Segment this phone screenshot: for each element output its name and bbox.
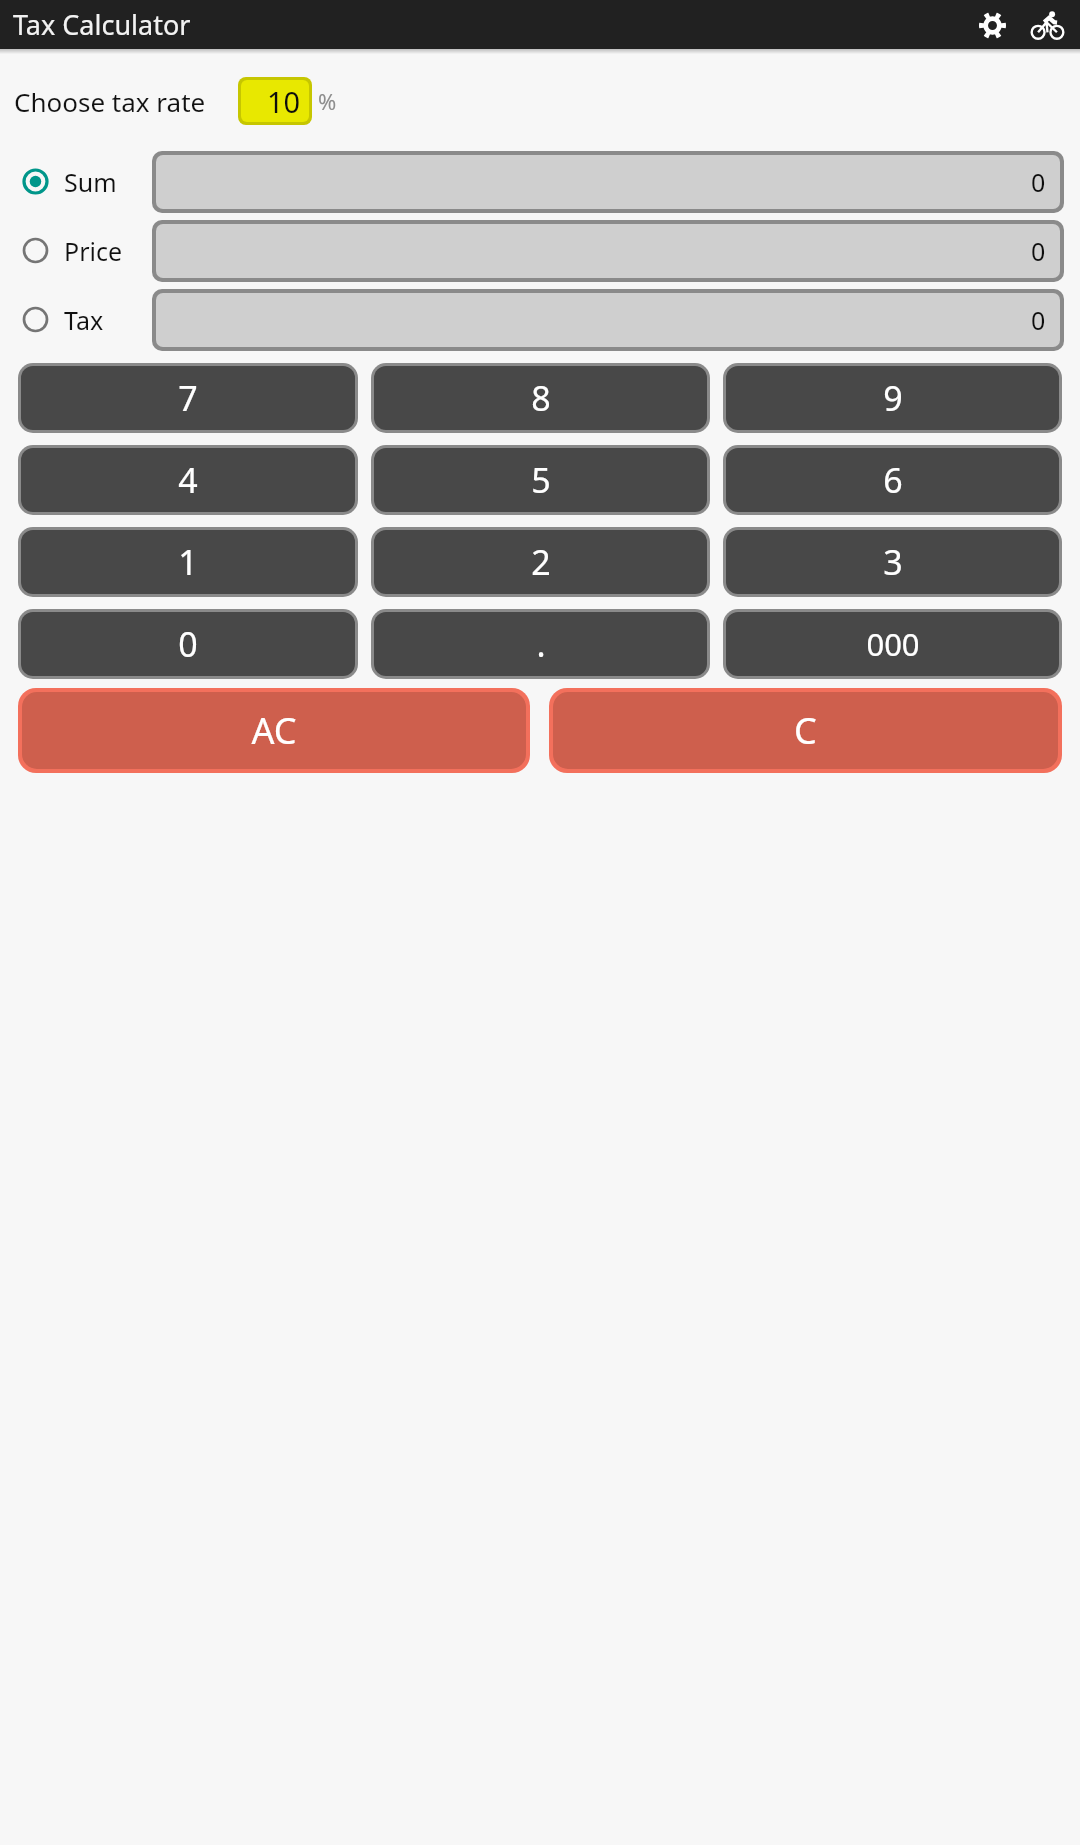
button[interactable]: 0 xyxy=(156,224,1060,278)
staticText: 4 xyxy=(178,457,198,503)
staticText: 000 xyxy=(866,623,920,665)
button[interactable]: 8 xyxy=(374,366,707,430)
button[interactable]: Settings xyxy=(968,1,1016,49)
staticText: 8 xyxy=(531,375,551,421)
staticText: 2 xyxy=(531,539,551,585)
button[interactable]: 000 xyxy=(726,612,1059,676)
button[interactable]: 0 xyxy=(21,612,355,676)
staticText: . xyxy=(536,621,546,667)
staticText: 9 xyxy=(883,375,903,421)
button[interactable]: 4 xyxy=(21,448,355,512)
button[interactable]: 10 xyxy=(241,80,309,122)
button[interactable]: 5 xyxy=(374,448,707,512)
staticText: C xyxy=(794,706,817,755)
staticText: % xyxy=(318,86,337,116)
button[interactable]: 0 xyxy=(156,293,1060,347)
staticText: 0 xyxy=(1031,165,1046,199)
button[interactable]: Tax xyxy=(0,288,152,351)
staticText: 10 xyxy=(267,82,301,121)
button[interactable]: 6 xyxy=(726,448,1059,512)
button[interactable]: AC xyxy=(22,692,526,769)
button[interactable]: . xyxy=(374,612,707,676)
button[interactable]: 2 xyxy=(374,530,707,594)
staticText: 5 xyxy=(531,457,551,503)
staticText: Tax Calculator xyxy=(13,6,191,43)
staticText: 7 xyxy=(178,375,198,421)
staticText: Choose tax rate xyxy=(14,84,206,119)
staticText: 6 xyxy=(883,457,903,503)
button[interactable]: 0 xyxy=(156,155,1060,209)
button[interactable]: 7 xyxy=(21,366,355,430)
staticText: Tax xyxy=(64,303,104,337)
staticText: 0 xyxy=(1031,234,1046,268)
button[interactable]: Price xyxy=(0,219,152,282)
button[interactable]: Sum xyxy=(0,150,152,213)
staticText: Price xyxy=(64,234,123,268)
staticText: 3 xyxy=(883,539,903,585)
button[interactable]: 1 xyxy=(21,530,355,594)
button[interactable]: 3 xyxy=(726,530,1059,594)
button[interactable]: 9 xyxy=(726,366,1059,430)
staticText: 0 xyxy=(1031,303,1046,337)
button[interactable]: Bike xyxy=(1023,1,1071,49)
staticText: 1 xyxy=(178,539,198,585)
staticText: 0 xyxy=(178,621,198,667)
button[interactable]: C xyxy=(553,692,1058,769)
staticText: AC xyxy=(251,706,297,755)
staticText: Sum xyxy=(64,165,117,199)
